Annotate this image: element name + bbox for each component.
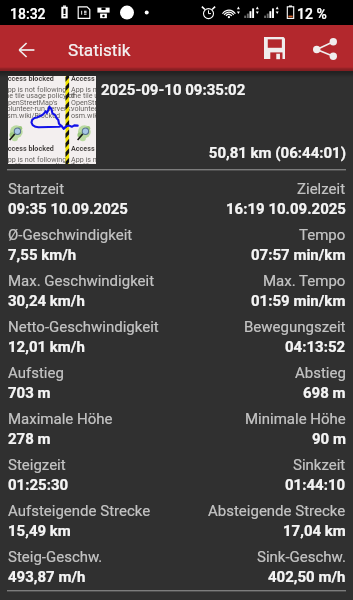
staticText: Tempo — [299, 226, 346, 244]
button[interactable]: Map preview — [8, 76, 96, 164]
staticText: 01:44:10 — [285, 476, 346, 494]
staticText: Access blocked — [71, 144, 96, 152]
staticText: Absteigende Strecke — [208, 502, 346, 520]
staticText: the tile usage policy of — [8, 91, 75, 99]
staticText: Minimale Höhe — [245, 410, 346, 428]
staticText: 30,24 km/h — [8, 292, 85, 310]
staticText: 90 m — [312, 430, 346, 448]
button[interactable]: Aufsteigende Strecke — [0, 498, 353, 544]
staticText: the tile usage policy of — [8, 161, 75, 164]
staticText: Aufstieg — [8, 364, 64, 382]
staticText: osm.wiki/Blocked — [71, 111, 96, 119]
button[interactable]: Startzeit — [0, 176, 353, 222]
staticText: the tile usage policy of — [71, 161, 96, 164]
staticText: Access blocked — [8, 76, 54, 82]
button[interactable]: Steigzeit — [0, 452, 353, 498]
staticText: 12 % — [297, 6, 327, 22]
staticText: Statistik — [68, 40, 131, 60]
staticText: 15,49 km — [8, 522, 71, 540]
staticText: App is not following — [8, 155, 67, 163]
button[interactable]: Ø-Geschwindigkeit — [0, 222, 353, 268]
staticText: Zielzeit — [297, 180, 346, 198]
staticText: Abstieg — [295, 364, 346, 382]
staticText: Netto-Geschwindigkeit — [8, 318, 159, 336]
staticText: App is not following — [8, 85, 67, 93]
button[interactable]: Steig-Geschw. — [0, 544, 353, 590]
staticText: App is not following — [71, 155, 96, 163]
staticText: 2025-09-10 09:35:02 — [101, 81, 246, 99]
staticText: 12,01 km/h — [8, 338, 85, 356]
button[interactable]: Back — [8, 31, 46, 69]
staticText: 04:13:52 — [285, 338, 346, 356]
staticText: App is not following — [71, 85, 96, 93]
staticText: Access blocked — [71, 76, 96, 82]
staticText: 703 m — [8, 384, 51, 402]
staticText: Aufsteigende Strecke — [8, 502, 151, 520]
staticText: volunteer-run servers: — [71, 104, 96, 112]
staticText: OpenStreetMap's — [71, 98, 96, 106]
staticText: 7,55 km/h — [8, 246, 77, 264]
staticText: Sinkzeit — [293, 456, 346, 474]
button[interactable]: Netto-Geschwindigkeit — [0, 314, 353, 360]
staticText: volunteer-run servers: — [8, 104, 72, 112]
staticText: 278 m — [8, 430, 51, 448]
staticText: 50,81 km (06:44:01) — [0, 144, 346, 162]
button[interactable]: Save — [256, 30, 292, 66]
staticText: Ø-Geschwindigkeit — [8, 226, 133, 244]
staticText: Bewegungszeit — [244, 318, 346, 336]
staticText: 01:25:30 — [8, 476, 69, 494]
staticText: Steigzeit — [8, 456, 66, 474]
staticText: Max. Geschwindigkeit — [8, 272, 155, 290]
staticText: 17,04 km — [283, 522, 346, 540]
staticText: osm.wiki/Blocked — [8, 111, 61, 119]
button[interactable]: Aufstieg — [0, 360, 353, 406]
button[interactable]: Share — [306, 30, 344, 68]
staticText: 16:19 10.09.2025 — [226, 200, 346, 218]
staticText: Maximale Höhe — [8, 410, 113, 428]
staticText: OpenStreetMap's — [8, 98, 58, 106]
staticText: Sink-Geschw. — [257, 548, 346, 566]
staticText: Max. Tempo — [263, 272, 346, 290]
button[interactable]: Maximale Höhe — [0, 406, 353, 452]
staticText: 01:59 min/km — [251, 292, 346, 310]
staticText: 07:57 min/km — [251, 246, 346, 264]
staticText: 698 m — [303, 384, 346, 402]
staticText: 18:32 — [10, 6, 46, 22]
staticText: Access blocked — [8, 144, 54, 152]
button[interactable]: Max. Geschwindigkeit — [0, 268, 353, 314]
staticText: 493,87 m/h — [8, 568, 86, 586]
staticText: 402,50 m/h — [268, 568, 346, 586]
staticText: Startzeit — [8, 180, 65, 198]
staticText: 09:35 10.09.2025 — [8, 200, 128, 218]
staticText: the tile usage policy of — [71, 91, 96, 99]
staticText: Steig-Geschw. — [8, 548, 103, 566]
